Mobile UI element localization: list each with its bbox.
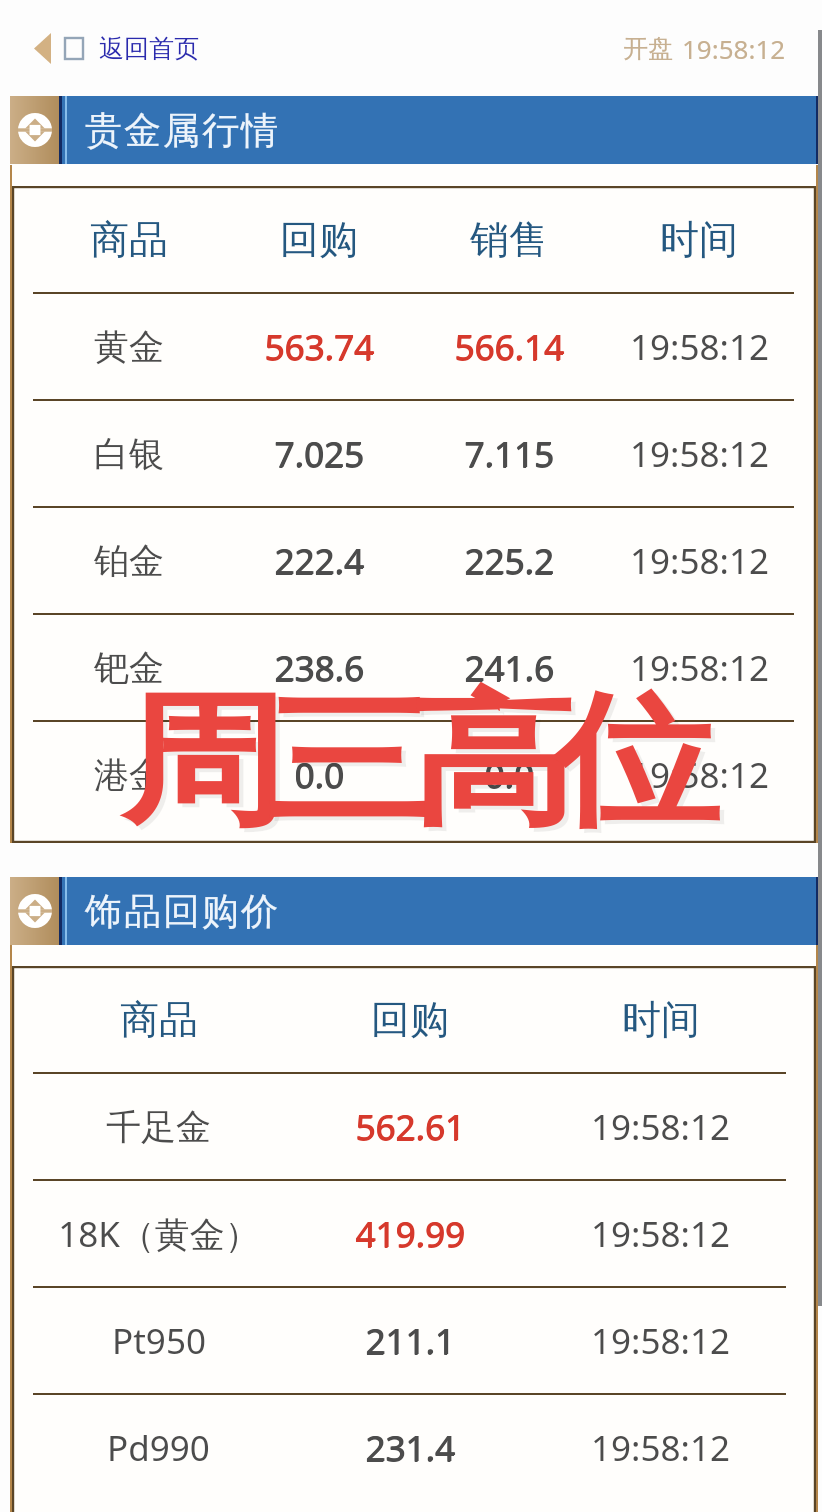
button[interactable]: 港金 (33, 722, 794, 827)
staticText: 231.4 (366, 1424, 456, 1472)
staticText: 19:58:12 (591, 1317, 730, 1365)
staticText: 19:58:12 (630, 323, 769, 371)
staticText: 千足金 (106, 1105, 211, 1149)
button[interactable]: 钯金 (33, 615, 794, 720)
button[interactable]: 18K（黄金） (33, 1181, 786, 1286)
staticText: 238.6 (274, 645, 364, 693)
staticText: 222.4 (275, 537, 365, 585)
staticText: 563.74 (265, 323, 375, 371)
staticText: 开盘 (623, 33, 673, 64)
staticText: 419.99 (356, 1210, 466, 1258)
staticText: 211.1 (366, 1317, 456, 1365)
staticText: 563.74 (264, 323, 374, 371)
other: Section logo (18, 113, 52, 147)
staticText: 7.025 (275, 430, 365, 478)
staticText: 19:58:12 (630, 537, 769, 585)
staticText: 211.1 (365, 1318, 455, 1366)
button[interactable]: 黄金 (33, 294, 794, 399)
button[interactable]: Pd990 (33, 1395, 786, 1500)
staticText: 225.2 (464, 538, 554, 586)
staticText: 时间 (622, 995, 700, 1044)
staticText: 231.4 (365, 1424, 455, 1472)
staticText: 7.115 (464, 431, 554, 479)
staticText: 黄金 (94, 325, 164, 369)
staticText: 贵金属行情 (84, 107, 279, 154)
button[interactable]: 白银 (33, 401, 794, 506)
button[interactable]: Section logo (10, 877, 818, 945)
staticText: 7.025 (274, 431, 364, 479)
other: Section logo (18, 894, 52, 928)
staticText: 563.74 (264, 324, 374, 372)
staticText: 0.0 (484, 752, 534, 800)
staticText: Pd990 (107, 1424, 210, 1472)
staticText: 566.14 (454, 324, 564, 372)
staticText: 回购 (280, 215, 358, 264)
staticText: 241.6 (464, 644, 554, 692)
staticText: 419.99 (355, 1210, 465, 1258)
staticText: 周三高位 (131, 672, 709, 851)
staticText: 0.0 (294, 752, 344, 800)
button[interactable]: Section logo (10, 96, 818, 164)
staticText: 白银 (94, 432, 164, 476)
staticText: 238.6 (274, 644, 364, 692)
staticText: 回购 (371, 995, 449, 1044)
staticText: 241.6 (465, 644, 555, 692)
staticText: 铂金 (94, 539, 164, 583)
staticText: 222.4 (274, 538, 364, 586)
staticText: 241.6 (464, 645, 554, 693)
staticText: 港金 (94, 753, 164, 797)
staticText: 商品 (120, 995, 198, 1044)
staticText: 562.61 (356, 1103, 466, 1151)
staticText: 562.61 (355, 1104, 465, 1152)
staticText: 19:58:12 (630, 751, 769, 799)
staticText: 7.025 (274, 430, 364, 478)
staticText: 19:58:12 (630, 644, 769, 692)
staticText: 222.4 (274, 537, 364, 585)
staticText: 7.115 (465, 430, 555, 478)
staticText: 562.61 (355, 1103, 465, 1151)
staticText: 0.0 (485, 751, 535, 799)
staticText: 销售 (470, 215, 548, 264)
staticText: 0.0 (294, 751, 344, 799)
staticText: 0.0 (484, 751, 534, 799)
staticText: 商品 (90, 215, 168, 264)
staticText: 19:58:12 (591, 1103, 730, 1151)
staticText: 231.4 (365, 1425, 455, 1473)
staticText: 时间 (660, 215, 738, 264)
button[interactable]: Pt950 (33, 1288, 786, 1393)
staticText: 419.99 (355, 1211, 465, 1259)
staticText: 周三高位 (135, 676, 713, 855)
staticText: 返回首页 (99, 33, 199, 64)
button[interactable]: 铂金 (33, 508, 794, 613)
staticText: 566.14 (454, 323, 564, 371)
staticText: 225.2 (465, 537, 555, 585)
staticText: 225.2 (464, 537, 554, 585)
staticText: 0.0 (295, 751, 345, 799)
staticText: 钯金 (94, 646, 164, 690)
staticText: 19:58:12 (630, 430, 769, 478)
staticText: 7.115 (464, 430, 554, 478)
staticText: 566.14 (455, 323, 565, 371)
staticText: 18K（黄金） (58, 1210, 260, 1258)
staticText: 19:58:12 (682, 31, 786, 66)
staticText: 238.6 (275, 644, 365, 692)
staticText: 19:58:12 (591, 1210, 730, 1258)
staticText: 饰品回购价 (84, 888, 279, 935)
button[interactable]: 千足金 (33, 1074, 786, 1179)
button[interactable]: 返回首页 (34, 33, 199, 64)
staticText: 211.1 (365, 1317, 455, 1365)
staticText: 19:58:12 (591, 1424, 730, 1472)
staticText: Pt950 (112, 1317, 206, 1365)
